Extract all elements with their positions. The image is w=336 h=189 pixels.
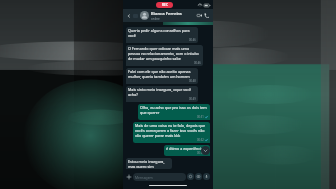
button[interactable]: Camera	[195, 173, 202, 180]
staticText: Mensagem	[135, 175, 153, 180]
button[interactable]: Bianca Ferreira	[151, 11, 196, 21]
staticText: Bianca Ferreira	[151, 11, 182, 17]
button[interactable]: Voice call	[203, 12, 210, 19]
button[interactable]: Estou meio insegura, mas quero sim	[126, 158, 172, 169]
staticText: online	[151, 17, 160, 21]
button[interactable]: Scroll to bottom	[201, 146, 210, 155]
staticText: 00:46	[194, 61, 201, 65]
button[interactable]: Attach	[125, 173, 132, 180]
button[interactable]: Voice message	[203, 173, 210, 180]
staticText: 00:48	[189, 79, 196, 83]
staticText: é ótimo a experiência	[166, 146, 204, 151]
button[interactable]: é ótimo a experiência	[164, 145, 210, 156]
staticText: 00:52	[197, 138, 204, 142]
staticText: 00:49	[189, 97, 196, 101]
button[interactable]: Mais sinto meio insegura, oque você acha…	[126, 86, 198, 102]
staticText: 00:52	[197, 151, 204, 155]
button[interactable]: Sticker	[187, 173, 194, 180]
staticText: REC	[162, 3, 168, 7]
button[interactable]: Mais de uma coisa eu te falo, depois que…	[133, 122, 210, 143]
staticText: O Fernando quer colocar mais uma pessoa …	[128, 46, 201, 61]
button[interactable]: Olha, eu acho que pra isso os dois tem q…	[138, 104, 210, 120]
button[interactable]: Video call	[196, 12, 203, 19]
staticText: Estou meio insegura, mas quero sim	[128, 159, 170, 168]
button[interactable]: Back	[126, 13, 132, 19]
staticText: Queria pedir alguns conselhos para você	[128, 28, 196, 38]
button[interactable]: Falei com ele que não aceito apenas mulh…	[126, 68, 198, 84]
staticText: Olha, eu acho que pra isso os dois tem q…	[140, 105, 208, 115]
button[interactable]: Contact photo	[140, 11, 149, 20]
button[interactable]: Mensagem	[133, 173, 186, 181]
button[interactable]: Queria pedir alguns conselhos para você	[126, 27, 198, 43]
staticText: 00:46	[189, 38, 196, 42]
staticText: Falei com ele que não aceito apenas mulh…	[128, 69, 196, 79]
staticText: Mais de uma coisa eu te falo, depois que…	[135, 123, 208, 138]
staticText: 00:51	[197, 115, 204, 119]
staticText: Mais sinto meio insegura, oque você acha…	[128, 87, 196, 97]
button[interactable]: O Fernando quer colocar mais uma pessoa …	[126, 45, 203, 66]
